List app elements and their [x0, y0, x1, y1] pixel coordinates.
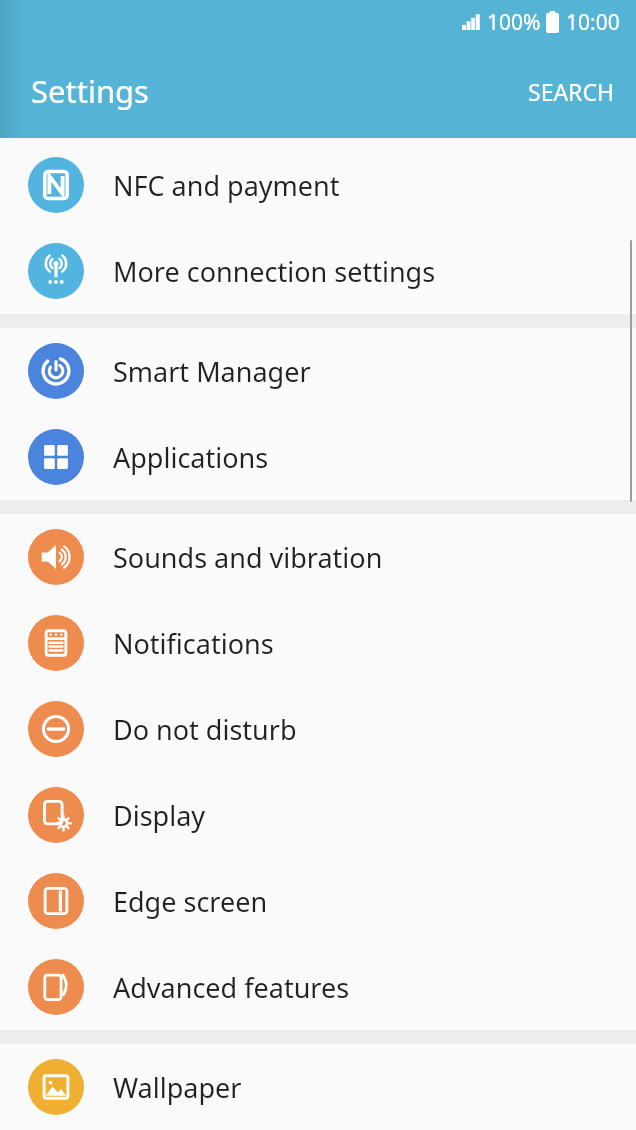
staticText: 100%: [487, 8, 541, 37]
button[interactable]: More connection settings: [0, 228, 636, 314]
staticText: Smart Manager: [113, 353, 311, 390]
staticText: Sounds and vibration: [113, 539, 383, 576]
staticText: Wallpaper: [113, 1069, 242, 1106]
button[interactable]: Smart Manager: [0, 328, 636, 414]
button[interactable]: Sounds and vibration: [0, 514, 636, 600]
staticText: NFC and payment: [113, 167, 340, 204]
button[interactable]: Wallpaper: [0, 1044, 636, 1130]
staticText: Settings: [31, 70, 149, 112]
staticText: More connection settings: [113, 253, 436, 290]
button[interactable]: Advanced features: [0, 944, 636, 1030]
button[interactable]: Edge screen: [0, 858, 636, 944]
staticText: Applications: [113, 439, 269, 476]
staticText: SEARCH: [528, 76, 614, 107]
button[interactable]: NFC and payment: [0, 142, 636, 228]
button[interactable]: Notifications: [0, 600, 636, 686]
button[interactable]: SEARCH: [506, 62, 636, 121]
button[interactable]: Do not disturb: [0, 686, 636, 772]
button[interactable]: Display: [0, 772, 636, 858]
button[interactable]: Applications: [0, 414, 636, 500]
staticText: Do not disturb: [113, 711, 297, 748]
staticText: Edge screen: [113, 883, 268, 920]
staticText: Display: [113, 797, 206, 834]
staticText: 10:00: [566, 8, 620, 37]
staticText: Advanced features: [113, 969, 350, 1006]
staticText: Notifications: [113, 625, 274, 662]
